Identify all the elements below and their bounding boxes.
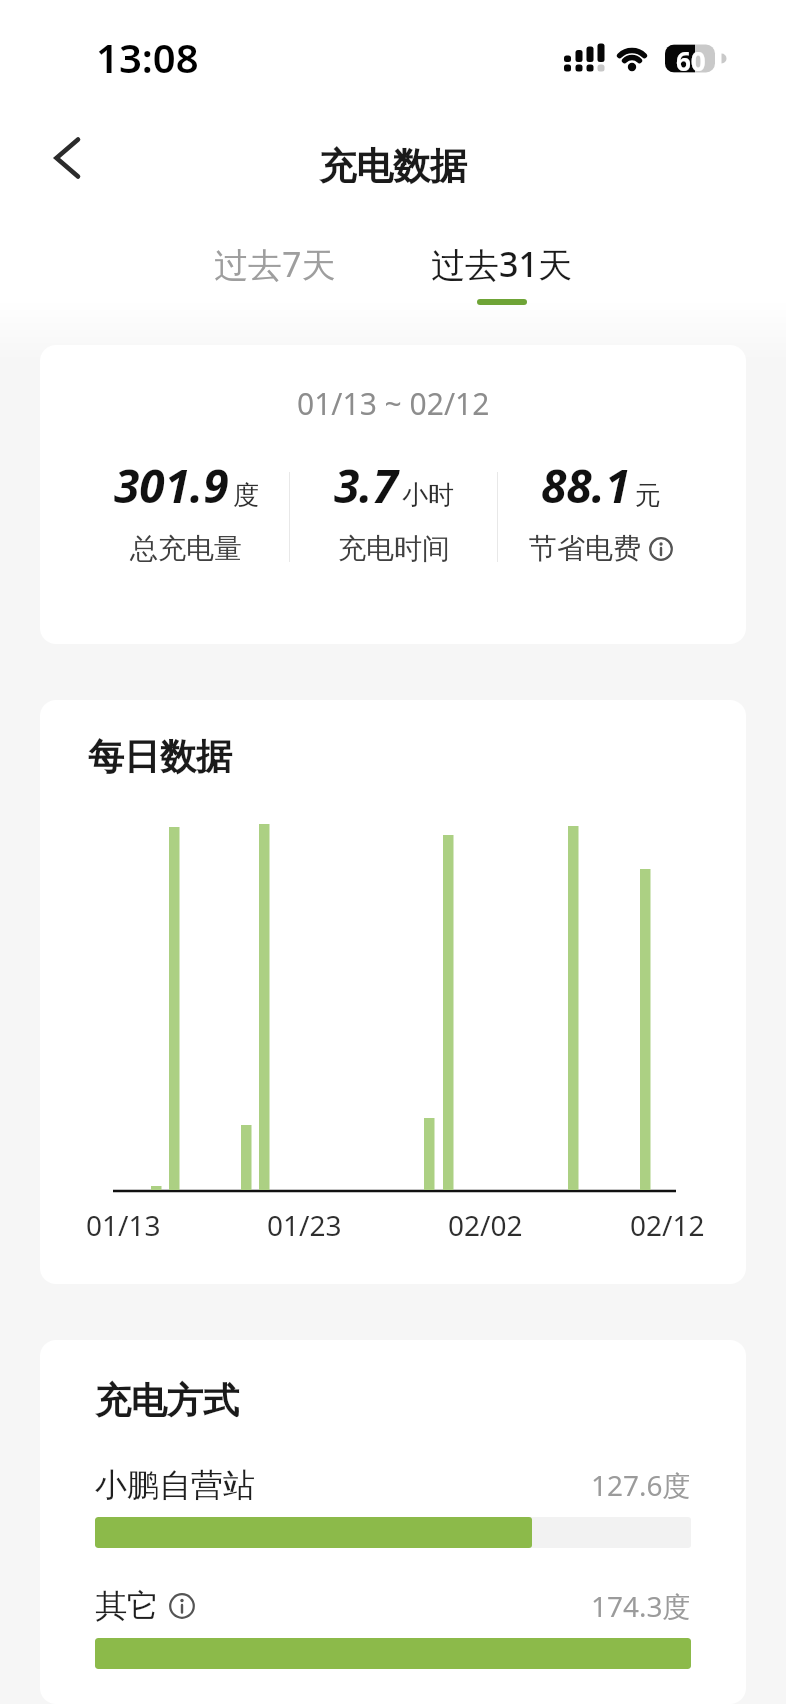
staticText: 度	[233, 479, 259, 512]
staticText: 过去31天	[431, 241, 572, 287]
button[interactable]	[36, 127, 98, 189]
staticText: 127.6度	[591, 1466, 691, 1504]
staticText: 总充电量	[130, 531, 242, 566]
staticText: 01/13 ~ 02/12	[297, 383, 490, 424]
staticText: 小时	[402, 479, 454, 512]
staticText: 13:08	[96, 30, 199, 84]
staticText: 60	[676, 43, 706, 78]
staticText: 88.1	[541, 454, 631, 517]
staticText: 3.7	[334, 454, 398, 517]
staticText: 301.9	[114, 454, 229, 517]
staticText: 01/13	[86, 1206, 161, 1244]
staticText: 充电方式	[95, 1378, 239, 1423]
staticText: 01/23	[267, 1206, 342, 1244]
staticText: 小鹏自营站	[95, 1465, 255, 1505]
staticText: 02/12	[630, 1206, 705, 1244]
staticText: 充电时间	[338, 531, 450, 566]
staticText: 充电数据	[319, 143, 467, 190]
staticText: 174.3度	[591, 1587, 691, 1625]
staticText: 过去7天	[214, 241, 336, 287]
staticText: 元	[635, 479, 661, 512]
staticText: 节省电费	[529, 531, 641, 566]
staticText: 02/02	[448, 1206, 523, 1244]
button[interactable]: 过去7天	[214, 241, 336, 305]
button[interactable]: 过去31天	[431, 241, 572, 305]
staticText: 其它	[95, 1586, 159, 1626]
staticText: 每日数据	[88, 734, 232, 779]
